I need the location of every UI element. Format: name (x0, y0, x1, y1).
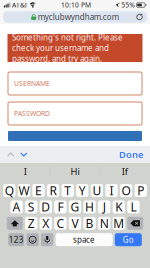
staticText: USERNAME (14, 79, 50, 88)
staticText: 123 (9, 234, 24, 245)
staticText: L (130, 199, 136, 215)
button[interactable]: S (25, 200, 37, 213)
staticText: Done (119, 148, 143, 161)
button[interactable]: U (91, 184, 103, 197)
button[interactable]: I (1, 163, 50, 180)
button[interactable]: N (98, 217, 110, 230)
staticText: H (85, 199, 94, 215)
staticText: space (73, 234, 95, 245)
staticText: S (28, 199, 35, 215)
button[interactable]: Previous field (4, 149, 17, 160)
staticText: PASSWORD (14, 109, 50, 118)
button[interactable]: Z (25, 217, 37, 230)
button[interactable]: M (113, 217, 125, 230)
staticText: P (137, 182, 144, 198)
staticText: Something's not right. Please check your… (12, 32, 123, 64)
staticText: 10:10 PM (61, 1, 91, 9)
button[interactable]: T (61, 184, 74, 197)
button[interactable]: F (54, 200, 67, 213)
staticText: F (57, 199, 63, 215)
staticText: AT&T (12, 1, 28, 9)
staticText: G (70, 199, 79, 215)
staticText: J (103, 199, 106, 215)
button[interactable]: L (127, 200, 140, 213)
button[interactable]: B (83, 217, 96, 230)
staticText: 55% (121, 1, 135, 9)
button[interactable]: If (100, 163, 149, 180)
button[interactable]: J (98, 200, 110, 213)
staticText: V (71, 215, 78, 231)
button[interactable]: G (69, 200, 81, 213)
button[interactable]: space (56, 233, 113, 246)
staticText: W (18, 182, 29, 198)
button[interactable]: 123 (8, 233, 24, 246)
button[interactable]: Y (76, 184, 88, 197)
button[interactable]: K (113, 200, 125, 213)
button[interactable]: H (83, 200, 96, 213)
button[interactable]: C (54, 217, 67, 230)
staticText: C (56, 215, 64, 231)
staticText: M (113, 215, 124, 231)
staticText: A (13, 199, 21, 215)
button[interactable]: Go (115, 233, 142, 246)
button[interactable]: Shift (7, 217, 23, 230)
button[interactable]: Delete (127, 217, 143, 230)
staticText: Q (5, 182, 14, 198)
button[interactable]: myclubwyndham.com (0, 10, 150, 24)
staticText: X (42, 215, 49, 231)
button[interactable]: Done (116, 145, 146, 164)
staticText: K (115, 199, 122, 215)
button[interactable]: D (40, 200, 52, 213)
button[interactable]: R (47, 184, 59, 197)
button[interactable]: V (69, 217, 81, 230)
button[interactable]: X (40, 217, 52, 230)
staticText: I (24, 165, 27, 178)
staticText: Z (28, 215, 35, 231)
staticText: O (122, 182, 131, 198)
staticText: Hi (70, 165, 79, 178)
staticText: If (122, 165, 128, 178)
button[interactable]: E (32, 184, 45, 197)
staticText: U (92, 182, 101, 198)
staticText: R (50, 182, 57, 198)
staticText: I (109, 182, 113, 198)
staticText: Y (79, 182, 86, 198)
staticText: N (100, 215, 109, 231)
button[interactable]: O (120, 184, 132, 197)
staticText: E (35, 182, 42, 198)
staticText: myclubwyndham.com (38, 12, 119, 22)
button[interactable]: I (105, 184, 118, 197)
button[interactable]: Emoji (26, 233, 39, 246)
staticText: Go (123, 234, 134, 245)
button[interactable]: Hi (50, 163, 100, 180)
button[interactable]: W (18, 184, 30, 197)
button[interactable]: Dictate (41, 233, 53, 246)
button[interactable]: Q (3, 184, 15, 197)
staticText: T (64, 182, 71, 198)
button[interactable]: Next field (17, 149, 30, 160)
staticText: D (41, 199, 50, 215)
staticText: B (86, 215, 94, 231)
button[interactable]: P (134, 184, 147, 197)
button[interactable]: A (10, 200, 23, 213)
